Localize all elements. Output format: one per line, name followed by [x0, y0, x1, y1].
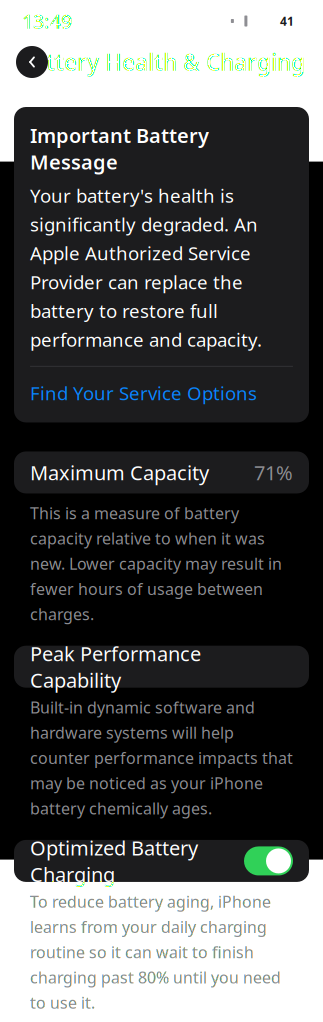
staticText: This is a measure of battery capacity re…: [30, 502, 282, 625]
staticText: Optimized Battery Charging: [30, 834, 198, 887]
staticText: Peak Performance Capability: [30, 640, 201, 693]
button[interactable]: Peak Performance Capability: [14, 646, 309, 688]
staticText: Important Battery Message: [30, 122, 209, 175]
staticText: Find Your Service Options: [30, 381, 257, 405]
staticText: Your battery's health is significantly d…: [30, 183, 262, 352]
button[interactable]: Find Your Service Options: [30, 367, 293, 407]
staticText: Maximum Capacity: [30, 459, 209, 486]
staticText: 41: [280, 13, 294, 29]
button[interactable]: Back: [16, 46, 48, 78]
staticText: 13:49: [22, 8, 72, 34]
staticText: 71%: [254, 459, 293, 486]
button[interactable]: Optimized Battery Charging: [14, 840, 309, 882]
staticText: To reduce battery aging, iPhone learns f…: [30, 891, 281, 1013]
staticText: Battery Health & Charging: [18, 47, 305, 77]
button[interactable]: Maximum Capacity: [14, 451, 309, 493]
staticText: Built-in dynamic software and hardware s…: [30, 697, 293, 819]
